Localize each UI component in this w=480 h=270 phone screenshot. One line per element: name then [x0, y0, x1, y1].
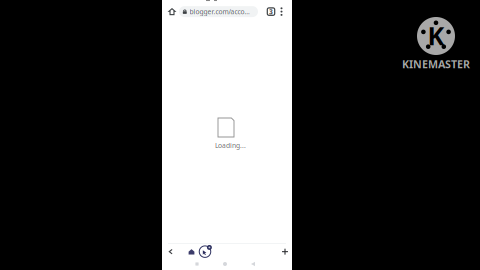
button[interactable]: Tabs — [266, 2, 276, 22]
button[interactable]: More options — [277, 2, 286, 22]
staticText: K — [427, 19, 444, 52]
button[interactable]: blogger.com/acco… — [179, 6, 258, 17]
button[interactable]: Home — [168, 2, 176, 22]
button[interactable]: Home — [186, 244, 197, 258]
button[interactable]: Back — [164, 244, 178, 258]
button[interactable]: Recents — [186, 258, 208, 270]
staticText: blogger.com/acco… — [190, 7, 250, 16]
staticText: KINEMASTER — [402, 57, 470, 71]
staticText: 3 — [269, 7, 273, 16]
button[interactable]: Back — [242, 258, 264, 270]
button[interactable]: Home — [214, 258, 236, 270]
staticText: Loading... — [215, 141, 246, 150]
button[interactable]: New tab — [278, 244, 292, 258]
